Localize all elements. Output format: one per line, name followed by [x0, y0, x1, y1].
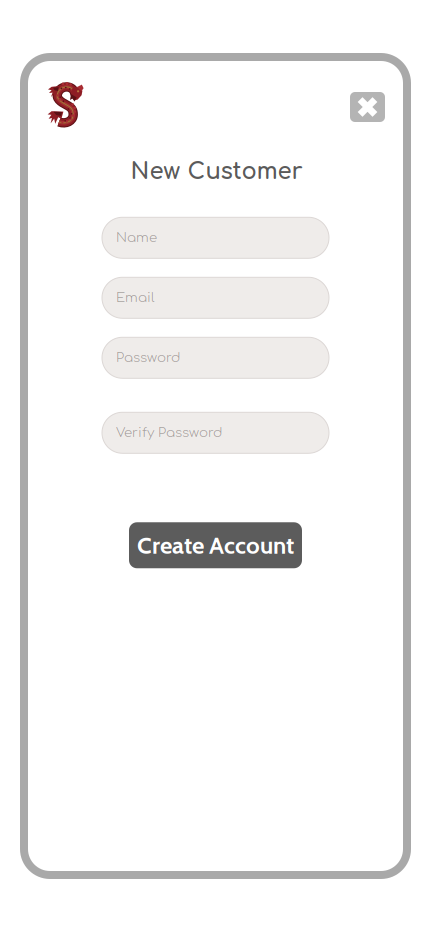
staticText: Create Account — [137, 531, 294, 560]
staticText: Password — [116, 350, 180, 365]
button[interactable]: Name — [102, 217, 329, 258]
button[interactable]: Create Account — [129, 522, 302, 568]
staticText: Verify Password — [116, 425, 222, 440]
staticText: Email — [116, 290, 155, 305]
button[interactable]: Close — [350, 92, 385, 122]
button[interactable]: Verify Password — [102, 412, 329, 453]
staticText: New Customer — [130, 159, 302, 184]
staticText: Name — [116, 230, 157, 245]
button[interactable]: Password — [102, 337, 329, 378]
button[interactable]: Email — [102, 277, 329, 318]
